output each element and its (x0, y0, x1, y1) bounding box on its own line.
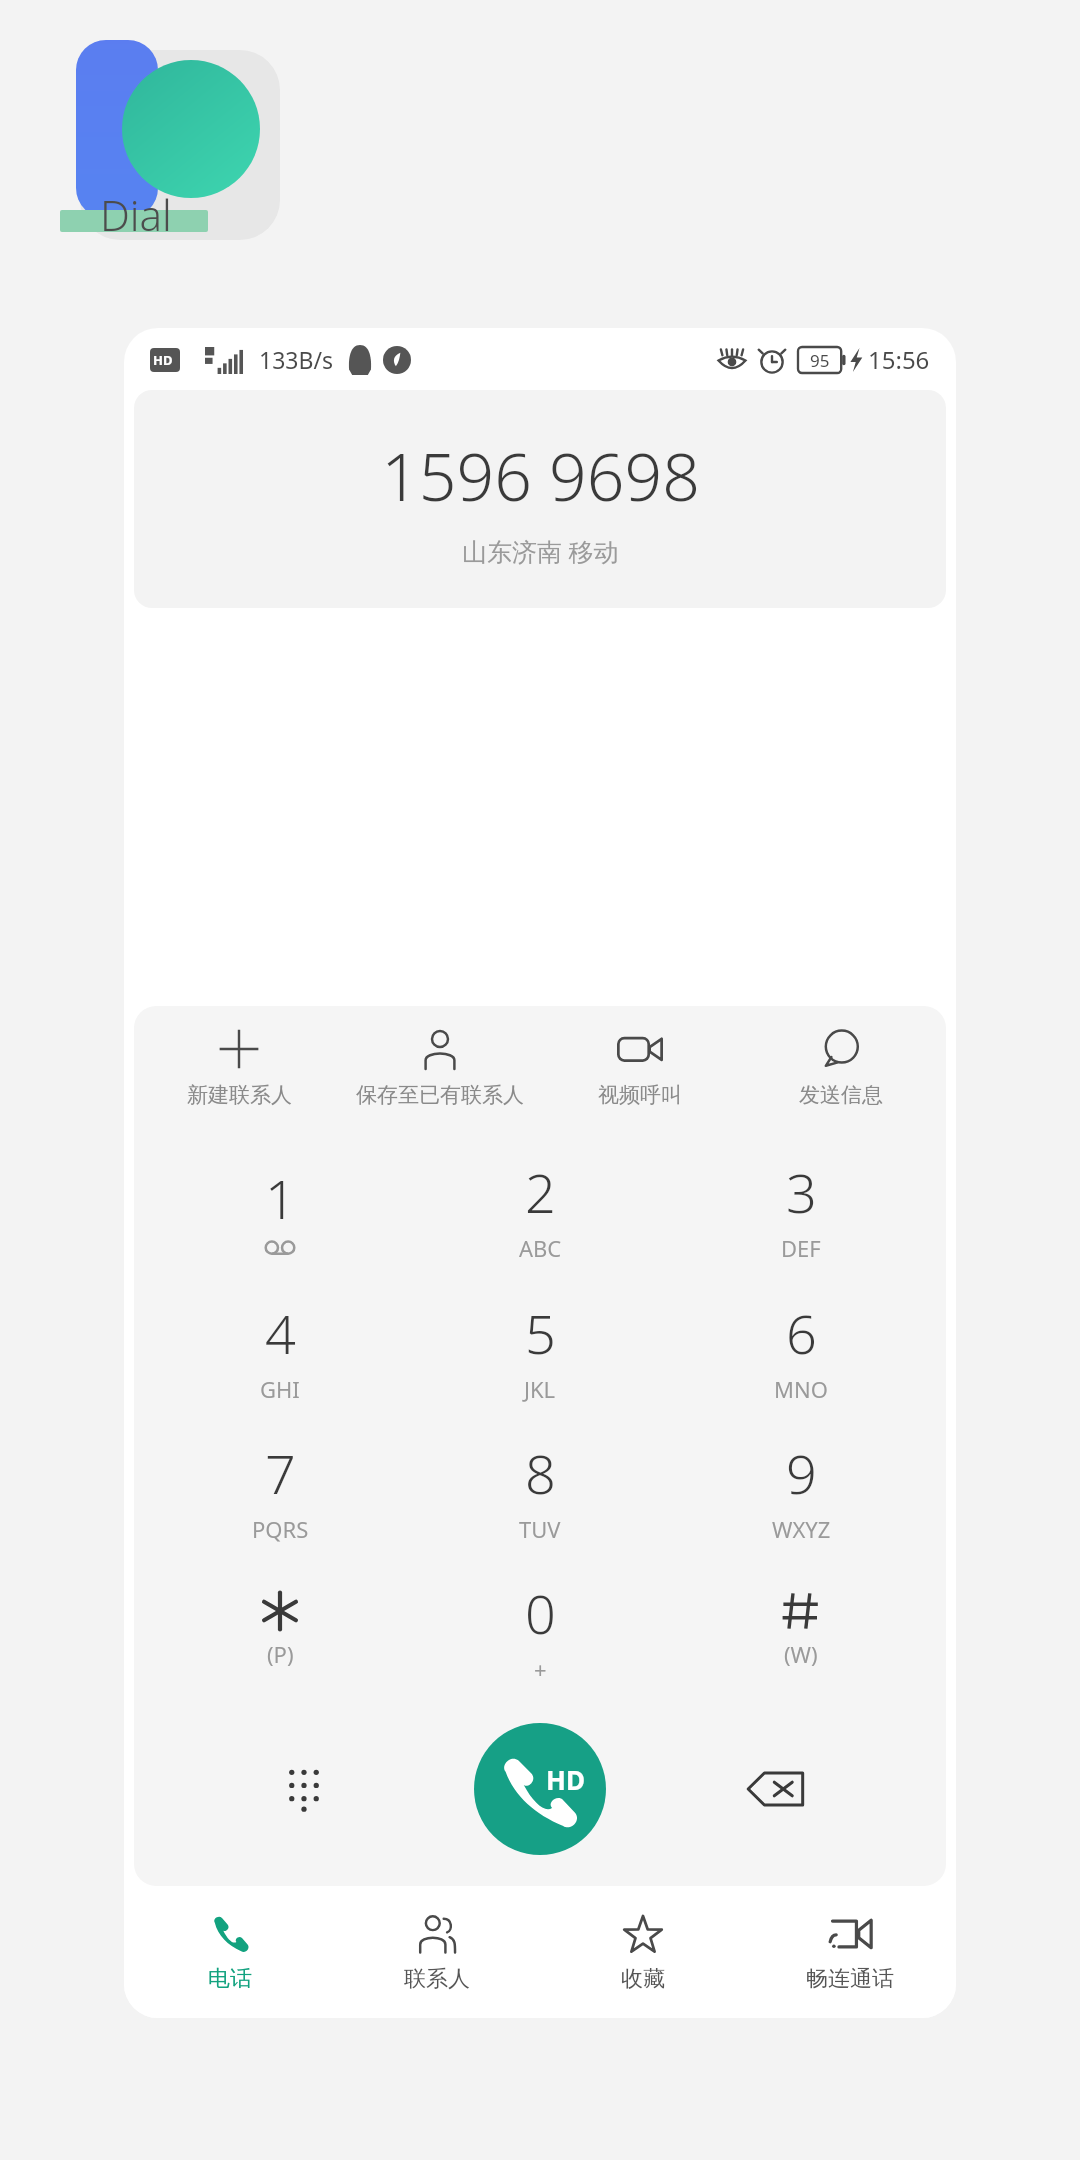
staticText: 8 (525, 1436, 556, 1510)
staticText: 畅连通话 (806, 1965, 894, 1993)
staticText: 133B/s (259, 344, 333, 375)
staticText: 联系人 (404, 1965, 470, 1993)
staticText: 0 (525, 1576, 556, 1650)
button[interactable]: 0 (425, 1562, 655, 1698)
staticText: + (534, 1654, 547, 1684)
staticText: 发送信息 (799, 1082, 883, 1108)
button[interactable]: 发送信息 (746, 1022, 936, 1112)
button[interactable]: 4 (165, 1282, 395, 1418)
staticText: 2 (525, 1155, 556, 1229)
staticText: 6 (786, 1296, 817, 1370)
staticText: (W) (784, 1639, 818, 1669)
staticText: 95 (810, 349, 830, 372)
button[interactable]: 9 (686, 1422, 916, 1558)
button[interactable]: 收藏 (543, 1886, 743, 2018)
button[interactable]: 保存至已有联系人 (345, 1022, 535, 1112)
button[interactable]: Call (474, 1723, 606, 1855)
staticText: JKL (524, 1374, 556, 1404)
staticText: HD (153, 351, 173, 369)
button[interactable]: 联系人 (337, 1886, 537, 2018)
staticText: 15:56 (868, 343, 930, 376)
staticText: 3 (786, 1155, 817, 1229)
staticText: 保存至已有联系人 (356, 1082, 524, 1108)
button[interactable]: (P) (165, 1562, 395, 1698)
button[interactable]: 3 (686, 1141, 916, 1277)
button[interactable]: Keypad (189, 1714, 419, 1864)
button[interactable]: 新建联系人 (144, 1022, 334, 1112)
staticText: 电话 (208, 1965, 252, 1993)
button[interactable]: 1596 9698 (134, 390, 946, 608)
staticText: 1 (265, 1161, 296, 1235)
staticText: 视频呼叫 (598, 1082, 682, 1108)
button[interactable]: 6 (686, 1282, 916, 1418)
staticText: TUV (519, 1514, 561, 1544)
staticText: HD (546, 1762, 585, 1797)
staticText: GHI (260, 1374, 300, 1404)
staticText: ABC (519, 1233, 562, 1263)
staticText: DEF (781, 1233, 821, 1263)
staticText: 4 (265, 1296, 296, 1370)
staticText: 山东济南 移动 (462, 534, 619, 568)
staticText: PQRS (252, 1514, 309, 1544)
button[interactable]: (W) (686, 1562, 916, 1698)
staticText: WXYZ (772, 1514, 831, 1544)
staticText: 9 (786, 1436, 817, 1510)
staticText: MNO (774, 1374, 828, 1404)
button[interactable]: 8 (425, 1422, 655, 1558)
button[interactable]: 视频呼叫 (545, 1022, 735, 1112)
button[interactable]: 1 (165, 1141, 395, 1277)
button[interactable]: 7 (165, 1422, 395, 1558)
staticText: Dial (100, 186, 172, 243)
staticText: 收藏 (621, 1965, 665, 1993)
staticText: 新建联系人 (187, 1082, 292, 1108)
staticText: 5 (525, 1296, 556, 1370)
button[interactable]: 2 (425, 1141, 655, 1277)
button[interactable]: Backspace (661, 1714, 891, 1864)
staticText: (P) (267, 1639, 294, 1669)
button[interactable]: 5 (425, 1282, 655, 1418)
staticText: 1596 9698 (381, 430, 700, 520)
staticText: 7 (265, 1436, 296, 1510)
button[interactable]: 畅连通话 (750, 1886, 950, 2018)
button[interactable]: 电话 (130, 1886, 330, 2018)
